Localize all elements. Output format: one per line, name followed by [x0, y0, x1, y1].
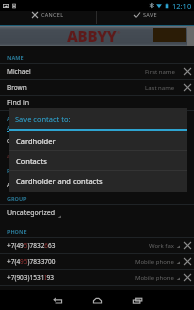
- button[interactable]: Contacts: [9, 151, 187, 170]
- button[interactable]: +7(495)7832663: [0, 238, 194, 253]
- staticText: Cardholder: [16, 136, 56, 146]
- button[interactable]: Uncategorized: [0, 205, 194, 221]
- staticText: CANCEL: [41, 11, 64, 18]
- staticText: PHONE: [7, 228, 27, 235]
- staticText: RELATED: [7, 168, 29, 175]
- button[interactable]: CANCEL: [0, 11, 96, 18]
- staticText: ADDRESS: [7, 124, 32, 131]
- staticText: Last name: [145, 84, 175, 92]
- button[interactable]: +7(903)1531I93: [0, 270, 194, 285]
- button[interactable]: SAVE: [97, 11, 194, 18]
- staticText: Find in: [7, 98, 30, 108]
- staticText: Work fax: [149, 242, 174, 250]
- staticText: GROUP: [7, 195, 27, 202]
- staticText: A: [7, 181, 11, 189]
- staticText: Brown: [7, 83, 145, 92]
- button[interactable]: Cardholder: [9, 131, 187, 150]
- staticText: First name: [145, 68, 175, 76]
- staticText: a: [7, 152, 11, 160]
- staticText: +7(495)7833700: [7, 257, 135, 266]
- button[interactable]: Michael: [0, 64, 194, 79]
- staticText: SAVE: [143, 11, 157, 18]
- staticText: Contacts: [16, 156, 47, 166]
- staticText: Michael: [7, 67, 145, 76]
- staticText: 12:10: [172, 1, 192, 11]
- button[interactable]: +7(495)7833700: [0, 254, 194, 269]
- button[interactable]: Clear Work fax: [180, 238, 194, 253]
- staticText: ABBYY: [67, 26, 117, 46]
- staticText: ®: [117, 30, 121, 35]
- button[interactable]: Recent apps: [117, 290, 157, 310]
- button[interactable]: Clear Mobile phone: [180, 254, 194, 269]
- staticText: Uncategorized: [7, 208, 55, 218]
- staticText: Save contact to:: [15, 114, 71, 124]
- button[interactable]: Home: [77, 290, 117, 310]
- staticText: +7(903)1531I93: [7, 273, 135, 282]
- staticText: +7(495)7832663: [7, 241, 149, 250]
- staticText: Cardholder and contacts: [16, 176, 103, 186]
- button[interactable]: Back: [37, 290, 77, 310]
- button[interactable]: Cardholder and contacts: [9, 171, 187, 190]
- button[interactable]: Clear Mobile phone: [180, 270, 194, 285]
- button[interactable]: Clear First name: [180, 64, 194, 79]
- staticText: Occupation: [7, 137, 40, 145]
- button[interactable]: Brown: [0, 80, 194, 95]
- staticText: ADDRESS: [7, 116, 30, 123]
- staticText: Mobile phone: [135, 258, 174, 266]
- button[interactable]: Clear Last name: [180, 80, 194, 95]
- staticText: NAME: [7, 54, 24, 61]
- staticText: Mobile phone: [135, 274, 174, 282]
